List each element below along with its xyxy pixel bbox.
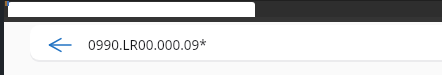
button[interactable]: Back: [46, 31, 74, 59]
staticText: 0990.LR00.000.09*: [88, 36, 207, 54]
button[interactable]: [8, 2, 255, 17]
